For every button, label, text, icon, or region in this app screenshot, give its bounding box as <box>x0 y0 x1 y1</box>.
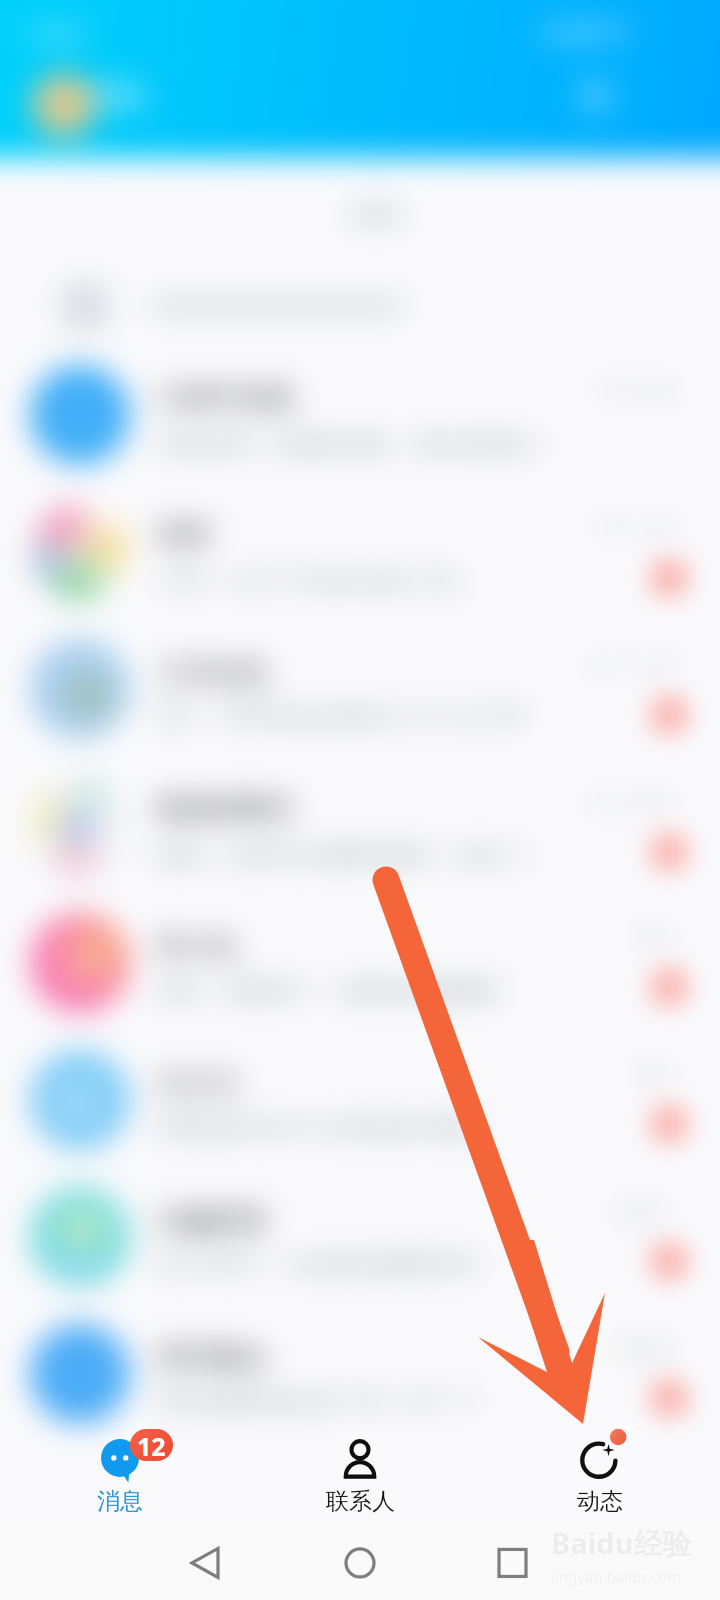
staticText: 同学聚会 <box>156 1340 268 1375</box>
staticText: 联系人 <box>326 1487 395 1516</box>
staticText: 你那边的文件什么时候发过来呢 <box>156 1113 478 1142</box>
staticText: [3条]你有一条新的消息，请注意查收一下 <box>156 427 562 458</box>
staticText: 李小红 <box>156 929 240 964</box>
staticText: 周末的聚会地点定了吗，回一下 <box>156 1387 478 1416</box>
button[interactable]: 联系人 <box>240 1412 480 1522</box>
staticText: 有人在吗？一起来玩游戏呀好吗 <box>156 1250 478 1279</box>
button[interactable]: 订阅号消息 <box>0 346 720 483</box>
staticText: 兴趣部落 <box>156 1203 268 1238</box>
other: 动态 <box>577 1437 623 1483</box>
staticText: 4G ▮ 87% <box>541 18 628 45</box>
staticText: 12 <box>137 1429 166 1461</box>
staticText: 消息 <box>97 1487 143 1516</box>
other: 联系人 <box>337 1437 383 1483</box>
other: 消息 <box>97 1437 143 1483</box>
staticText: 10:42 <box>28 18 85 48</box>
button[interactable]: 工作交流 <box>0 620 720 757</box>
button[interactable]: 动态 <box>480 1412 720 1522</box>
button[interactable]: 王大力 <box>0 1031 720 1168</box>
button[interactable]: 家族群聊天 <box>0 757 720 894</box>
staticText: 妈妈：记得早点回家吃饭呀，别忘了… <box>156 838 543 869</box>
staticText: 好的，我知道了，谢谢你的提醒啦 <box>156 976 501 1005</box>
staticText: 工作交流 <box>156 655 268 690</box>
button[interactable]: 班群 <box>0 483 720 620</box>
staticText: 家族群聊天 <box>156 791 296 826</box>
button[interactable]: 李小红 <box>0 894 720 1031</box>
button[interactable]: 同学聚会 <box>0 1305 720 1442</box>
staticText: 订阅号消息 <box>156 380 296 415</box>
staticText: 动态 <box>577 1487 623 1516</box>
staticText: 王大力 <box>156 1066 240 1101</box>
button[interactable]: 消息 <box>0 1412 240 1522</box>
staticText: Baidu经验 <box>551 1523 692 1563</box>
button[interactable]: 兴趣部落 <box>0 1168 720 1305</box>
staticText: 消息 <box>90 78 146 113</box>
staticText: 班群 <box>156 517 212 552</box>
